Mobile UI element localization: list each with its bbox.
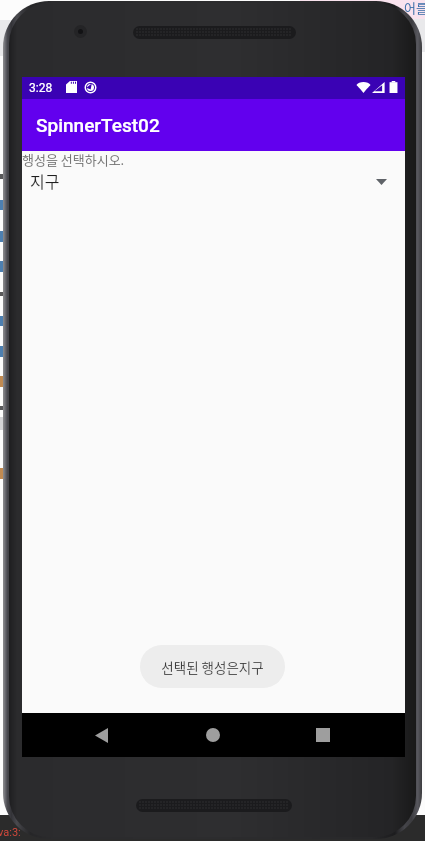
staticText: 3:28 xyxy=(29,81,53,95)
staticText: va:3: xyxy=(0,826,21,839)
staticText: 어를 xyxy=(404,0,425,17)
staticText: 지구 xyxy=(30,169,60,192)
staticText: 선택된 행성은지구 xyxy=(161,657,264,677)
button[interactable]: Back xyxy=(81,713,122,757)
button[interactable]: Recents xyxy=(302,713,343,757)
staticText: 행성을 선택하시오. xyxy=(22,150,125,169)
button[interactable]: 선택된 행성은지구 xyxy=(140,645,285,688)
staticText: SpinnerTest02 xyxy=(36,114,160,136)
button[interactable]: Home xyxy=(192,713,233,757)
button[interactable]: 지구 xyxy=(22,168,405,196)
